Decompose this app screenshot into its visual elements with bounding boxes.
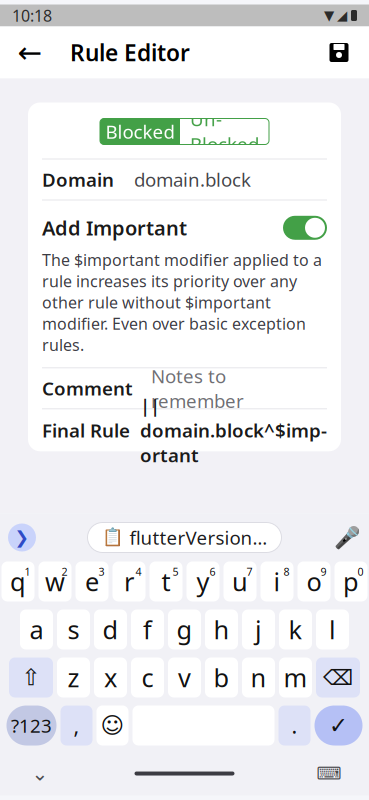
button[interactable]: 📋 bbox=[87, 522, 281, 552]
staticText: x bbox=[104, 661, 117, 694]
staticText: 3 bbox=[98, 564, 104, 579]
button[interactable]: i bbox=[260, 561, 293, 601]
button[interactable]: c bbox=[131, 657, 164, 697]
button[interactable]: b bbox=[205, 657, 238, 697]
staticText: Un-Blocked bbox=[190, 107, 259, 156]
button[interactable]: Back bbox=[6, 28, 54, 76]
button[interactable]: q bbox=[1, 561, 34, 601]
button[interactable]: u bbox=[223, 561, 256, 601]
button[interactable]: Domain bbox=[28, 159, 341, 199]
staticText: Blocked bbox=[105, 119, 174, 144]
staticText: ❯ bbox=[14, 528, 29, 547]
button[interactable]: More suggestions bbox=[8, 523, 36, 551]
button[interactable]: s bbox=[57, 609, 90, 649]
staticText: domain.block bbox=[134, 167, 251, 192]
staticText: 8 bbox=[283, 564, 289, 579]
button[interactable]: d bbox=[94, 609, 127, 649]
staticText: z bbox=[67, 661, 79, 694]
staticText: Comment bbox=[42, 376, 133, 401]
button[interactable]: t bbox=[149, 561, 182, 601]
button[interactable]: k bbox=[279, 609, 312, 649]
button[interactable]: e bbox=[75, 561, 108, 601]
button[interactable]: m bbox=[279, 657, 312, 697]
staticText: 5 bbox=[172, 564, 178, 579]
staticText: ||domain.block^$important bbox=[140, 393, 327, 467]
button[interactable]: Add Important toggle bbox=[283, 216, 327, 240]
button[interactable]: r bbox=[112, 561, 145, 601]
button[interactable]: y bbox=[186, 561, 219, 601]
staticText: Add Important bbox=[42, 214, 187, 241]
staticText: The $important modifier applied to a rul… bbox=[42, 249, 322, 355]
button[interactable]: f bbox=[131, 609, 164, 649]
staticText: Final Rule bbox=[42, 418, 130, 443]
staticText: 10:18 bbox=[12, 5, 52, 26]
staticText: b bbox=[213, 661, 229, 694]
staticText: k bbox=[288, 613, 302, 646]
staticText: ☺ bbox=[100, 713, 124, 738]
staticText: ⌫ bbox=[323, 665, 353, 690]
staticText: e bbox=[85, 565, 99, 598]
button[interactable]: Un-Blocked bbox=[180, 118, 269, 144]
staticText: w bbox=[45, 565, 65, 598]
staticText: ▼ bbox=[324, 8, 334, 23]
button[interactable]: Save bbox=[315, 28, 363, 76]
button[interactable]: x bbox=[94, 657, 127, 697]
button[interactable]: g bbox=[168, 609, 201, 649]
staticText: l bbox=[329, 613, 336, 646]
staticText: , bbox=[73, 711, 79, 740]
button[interactable]: n bbox=[242, 657, 275, 697]
staticText: d bbox=[102, 613, 118, 646]
staticText: j bbox=[255, 613, 262, 646]
button[interactable]: Enter bbox=[314, 705, 362, 745]
staticText: ✓ bbox=[329, 713, 348, 738]
staticText: 0 bbox=[357, 564, 363, 579]
button[interactable]: Blocked bbox=[100, 118, 180, 144]
button[interactable]: ?123 bbox=[6, 705, 56, 745]
staticText: c bbox=[141, 661, 153, 694]
button[interactable]: , bbox=[60, 705, 92, 745]
button[interactable]: Comment bbox=[28, 368, 341, 408]
staticText: p bbox=[343, 565, 359, 598]
button[interactable]: a bbox=[20, 609, 53, 649]
staticText: ⌨ bbox=[316, 764, 341, 783]
staticText: g bbox=[176, 613, 192, 646]
staticText: n bbox=[250, 661, 266, 694]
button[interactable]: ⇧ bbox=[9, 657, 53, 697]
staticText: r bbox=[124, 565, 134, 598]
staticText: i bbox=[273, 565, 280, 598]
staticText: y bbox=[196, 565, 209, 598]
button[interactable]: l bbox=[316, 609, 349, 649]
button[interactable]: Hide keyboard bbox=[20, 760, 60, 786]
button[interactable]: p bbox=[334, 561, 367, 601]
button[interactable]: Switch keyboard bbox=[309, 760, 349, 786]
staticText: ⇧ bbox=[21, 665, 40, 690]
button[interactable]: ⌫ bbox=[316, 657, 360, 697]
button[interactable]: w bbox=[38, 561, 71, 601]
staticText: 1 bbox=[24, 564, 30, 579]
staticText: f bbox=[143, 613, 152, 646]
button[interactable]: j bbox=[242, 609, 275, 649]
staticText: 4 bbox=[135, 564, 141, 579]
staticText: h bbox=[213, 613, 229, 646]
staticText: flutterVersion… bbox=[129, 525, 267, 550]
button[interactable]: v bbox=[168, 657, 201, 697]
staticText: v bbox=[178, 661, 191, 694]
button[interactable]: . bbox=[278, 705, 310, 745]
staticText: a bbox=[29, 613, 43, 646]
staticText: u bbox=[232, 565, 248, 598]
staticText: q bbox=[10, 565, 26, 598]
button[interactable]: ☺ bbox=[96, 705, 128, 745]
button[interactable]: h bbox=[205, 609, 238, 649]
button[interactable]: z bbox=[57, 657, 90, 697]
button[interactable]: o bbox=[297, 561, 330, 601]
button[interactable]: Voice input bbox=[333, 523, 361, 551]
staticText: Notes to remember bbox=[151, 363, 244, 413]
staticText: Domain bbox=[42, 167, 114, 192]
staticText: t bbox=[161, 565, 170, 598]
staticText: ← bbox=[17, 36, 42, 69]
staticText: 2 bbox=[61, 564, 67, 579]
staticText: 📋 bbox=[101, 528, 123, 547]
staticText: 🎤 bbox=[333, 525, 360, 550]
